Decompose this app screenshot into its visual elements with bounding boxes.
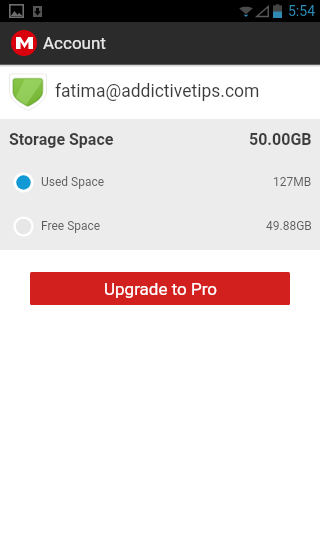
staticText: 49.88GB [266, 219, 312, 233]
staticText: 127MB [273, 175, 312, 189]
staticText: Free Space [41, 219, 101, 233]
staticText: Storage Space [9, 130, 114, 149]
button[interactable]: Free Space [0, 204, 320, 248]
staticText: 5:54 [288, 3, 315, 19]
staticText: Account [43, 33, 106, 53]
button[interactable]: Upgrade to Pro [30, 272, 290, 305]
button[interactable]: fatima@addictivetips.com [0, 64, 320, 119]
button[interactable]: Used Space [0, 160, 320, 204]
staticText: fatima@addictivetips.com [55, 81, 260, 102]
staticText: Used Space [41, 175, 105, 189]
staticText: 50.00GB [249, 130, 312, 149]
staticText: Upgrade to Pro [104, 279, 217, 299]
